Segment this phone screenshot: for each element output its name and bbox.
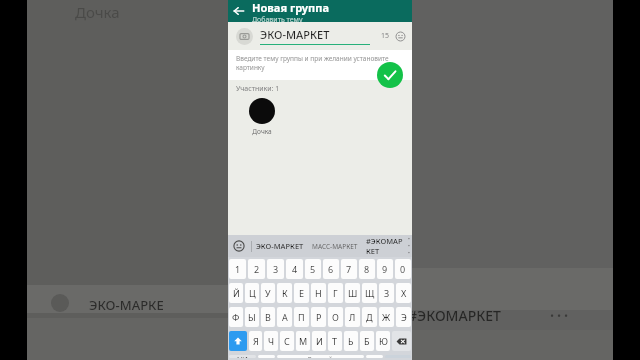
staticText: 3 [273, 263, 279, 275]
button[interactable]: Ю [376, 331, 390, 351]
button[interactable]: , [258, 355, 275, 358]
button[interactable]: Ф [229, 307, 243, 327]
button[interactable]: Й [229, 283, 243, 303]
button[interactable]: ЭКО-МАРКЕТ [256, 241, 304, 251]
button[interactable]: Щ [362, 283, 377, 303]
staticText: Добавить тему [252, 15, 303, 22]
button[interactable]: Р [311, 307, 326, 327]
staticText: О [332, 311, 339, 323]
button[interactable]: Ь [344, 331, 358, 351]
staticText: Щ [365, 287, 375, 299]
button[interactable]: Т [328, 331, 342, 351]
button[interactable]: Ц [245, 283, 259, 303]
button[interactable]: Э [396, 307, 411, 327]
button[interactable]: 8 [359, 259, 375, 279]
staticText: Г [333, 287, 338, 299]
button[interactable]: Ч [264, 331, 278, 351]
staticText: К [282, 287, 288, 299]
staticText: П [298, 311, 305, 323]
button[interactable]: !#1 [229, 355, 256, 358]
staticText: МАСС-МАРКЕТ [312, 242, 358, 251]
button[interactable]: Назад [231, 3, 247, 19]
button[interactable]: У [261, 283, 275, 303]
button[interactable]: 3 [267, 259, 284, 279]
button[interactable]: Готово [377, 62, 403, 88]
button[interactable]: Ш [345, 283, 360, 303]
button[interactable]: #ЭКОМАРКЕТ [366, 236, 404, 256]
button[interactable]: 5 [305, 259, 321, 279]
staticText: 6 [328, 263, 334, 275]
staticText: Я [253, 335, 259, 347]
staticText: 0 [400, 263, 406, 275]
button[interactable]: 4 [286, 259, 303, 279]
button[interactable]: Я [249, 331, 262, 351]
button[interactable]: Ж [379, 307, 394, 327]
staticText: Б [364, 335, 370, 347]
button[interactable]: Х [396, 283, 411, 303]
staticText: ЭКО-МАРКЕ [89, 296, 164, 314]
button[interactable]: П [294, 307, 309, 327]
staticText: ЭКО-МАРКЕТ [260, 27, 330, 42]
staticText: Ч [268, 335, 275, 347]
button[interactable]: . [366, 355, 383, 358]
staticText: 1 [235, 263, 241, 275]
button[interactable]: Ы [245, 307, 259, 327]
button[interactable]: МАСС-МАРКЕТ [312, 242, 358, 251]
button[interactable]: Дочка [244, 98, 280, 136]
staticText: 9 [382, 263, 388, 275]
staticText: Е [299, 287, 305, 299]
staticText: Ш [348, 287, 358, 299]
button[interactable]: М [296, 331, 310, 351]
button[interactable]: Е [294, 283, 309, 303]
button[interactable]: 0 [395, 259, 411, 279]
button[interactable]: 7 [341, 259, 357, 279]
staticText: А [282, 311, 288, 323]
staticText: 15 [381, 31, 390, 41]
button[interactable]: 6 [323, 259, 339, 279]
button[interactable]: 2 [248, 259, 265, 279]
staticText: Х [401, 287, 407, 299]
staticText: • • • [550, 308, 569, 323]
button[interactable]: К [277, 283, 292, 303]
button[interactable]: И [312, 331, 326, 351]
button[interactable]: В [261, 307, 275, 327]
button[interactable]: Добавить фото группы [236, 28, 253, 45]
staticText: Н [315, 287, 322, 299]
button[interactable]: Смайлы [232, 239, 246, 253]
staticText: 7 [346, 263, 352, 275]
button[interactable]: Пробел [277, 355, 364, 358]
staticText: ◄ Русский ► [301, 355, 340, 358]
staticText: #ЭКОМАРКЕТ [366, 236, 404, 256]
button[interactable]: Б [360, 331, 374, 351]
button[interactable]: 9 [377, 259, 393, 279]
button[interactable]: Н [311, 283, 326, 303]
staticText: С [284, 335, 290, 347]
staticText: Р [316, 311, 322, 323]
button[interactable]: Д [362, 307, 377, 327]
button[interactable]: Эмодзи [394, 30, 407, 43]
button[interactable]: Удалить [392, 331, 411, 351]
staticText: 8 [364, 263, 370, 275]
button[interactable]: А [277, 307, 292, 327]
button[interactable]: ЭКО-МАРКЕТ [260, 27, 370, 45]
staticText: Э [401, 311, 407, 323]
staticText: Д [366, 311, 373, 323]
staticText: Новая группа [252, 0, 329, 15]
button[interactable]: С [280, 331, 294, 351]
button[interactable]: Л [345, 307, 360, 327]
button[interactable]: Г [328, 283, 343, 303]
button[interactable]: З [379, 283, 394, 303]
button[interactable]: О [328, 307, 343, 327]
staticText: Участники: 1 [236, 84, 280, 94]
staticText: #ЭКОМАРКЕТ [408, 306, 501, 325]
staticText: 4 [292, 263, 298, 275]
button[interactable]: 1 [229, 259, 246, 279]
button[interactable]: Shift [229, 331, 247, 351]
staticText: М [299, 335, 308, 347]
staticText: Ь [348, 335, 354, 347]
staticText: И [316, 335, 323, 347]
